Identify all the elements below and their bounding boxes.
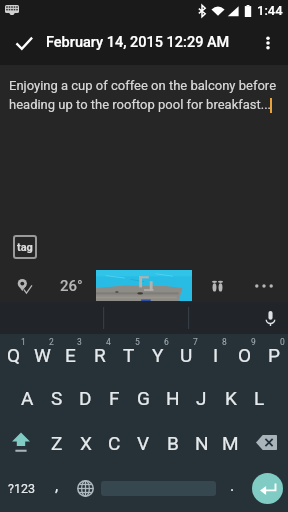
button[interactable]: J — [187, 376, 216, 420]
staticText: Q — [7, 344, 21, 366]
staticText: U — [180, 344, 193, 366]
staticText: E — [65, 344, 76, 366]
staticText: 5 — [135, 337, 140, 347]
button[interactable]: W — [28, 334, 56, 376]
button[interactable]: Z — [42, 420, 71, 465]
staticText: 6 — [164, 337, 169, 347]
staticText: B — [167, 432, 179, 454]
staticText: 1:44 — [257, 3, 283, 18]
staticText: O — [238, 344, 252, 366]
button[interactable]: 26° — [52, 268, 90, 304]
button[interactable]: Q — [0, 334, 28, 376]
staticText: February 14, 2015 12:29 AM — [46, 34, 230, 51]
button[interactable]: Voice input — [254, 302, 286, 334]
button[interactable]: Location — [6, 268, 42, 304]
staticText: ?123 — [8, 481, 35, 496]
button[interactable]: H — [158, 376, 187, 420]
button[interactable]: X — [71, 420, 100, 465]
button[interactable]: D — [71, 376, 100, 420]
button[interactable]: U — [172, 334, 201, 376]
button[interactable]: Shift — [0, 420, 42, 465]
staticText: tag — [17, 241, 33, 254]
staticText: W — [34, 344, 51, 366]
button[interactable]: Backspace — [245, 420, 288, 465]
staticText: 3 — [77, 337, 82, 347]
button[interactable]: M — [216, 420, 245, 465]
staticText: N — [195, 432, 209, 454]
staticText: J — [196, 387, 207, 409]
button[interactable]: C — [100, 420, 129, 465]
staticText: V — [137, 432, 150, 454]
staticText: 7 — [193, 337, 198, 347]
button[interactable]: More — [246, 268, 282, 304]
staticText: L — [254, 387, 265, 409]
button[interactable]: ?123 — [0, 465, 43, 512]
staticText: Y — [152, 344, 164, 366]
button[interactable]: F — [100, 376, 129, 420]
button[interactable]: B — [158, 420, 187, 465]
staticText: C — [108, 432, 121, 454]
button[interactable]: R — [85, 334, 114, 376]
button[interactable]: Enter — [246, 465, 288, 512]
staticText: A — [21, 387, 34, 409]
staticText: 8 — [222, 337, 227, 347]
staticText: X — [80, 432, 92, 454]
staticText: H — [166, 387, 180, 409]
staticText: 26° — [60, 277, 83, 295]
staticText: D — [79, 387, 92, 409]
staticText: K — [225, 387, 237, 409]
button[interactable]: More options — [248, 23, 288, 63]
staticText: 4 — [106, 337, 111, 347]
button[interactable]: E — [56, 334, 85, 376]
staticText: P — [268, 344, 280, 366]
button[interactable]: Photo attachment — [96, 270, 192, 301]
staticText: M — [222, 432, 239, 454]
button[interactable]: Steps — [199, 268, 235, 304]
button[interactable]: O — [230, 334, 259, 376]
button[interactable]: V — [129, 420, 158, 465]
button[interactable]: P — [259, 334, 288, 376]
staticText: I — [213, 344, 219, 366]
staticText: 0 — [280, 337, 285, 347]
staticText: S — [51, 387, 63, 409]
button[interactable]: G — [129, 376, 158, 420]
button[interactable]: tag — [13, 235, 37, 259]
staticText: R — [94, 344, 106, 366]
staticText: T — [123, 344, 135, 366]
button[interactable]: N — [187, 420, 216, 465]
staticText: 9 — [251, 337, 256, 347]
button[interactable]: I — [201, 334, 230, 376]
button[interactable]: Done — [2, 21, 46, 65]
button[interactable]: Y — [143, 334, 172, 376]
staticText: F — [109, 387, 120, 409]
button[interactable]: , — [43, 465, 71, 512]
staticText: . — [230, 476, 235, 495]
button[interactable]: Space — [99, 465, 218, 512]
staticText: G — [137, 387, 150, 409]
button[interactable]: K — [216, 376, 245, 420]
staticText: , — [55, 476, 59, 495]
button[interactable]: L — [245, 376, 274, 420]
staticText: Enjoying a cup of coffee on the balcony … — [9, 78, 286, 112]
staticText: Z — [51, 432, 63, 454]
staticText: 1 — [21, 337, 26, 347]
button[interactable]: A — [13, 376, 42, 420]
button[interactable]: Change language — [71, 465, 99, 512]
button[interactable]: . — [218, 465, 246, 512]
button[interactable]: T — [114, 334, 143, 376]
staticText: 2 — [49, 337, 54, 347]
button[interactable]: S — [42, 376, 71, 420]
